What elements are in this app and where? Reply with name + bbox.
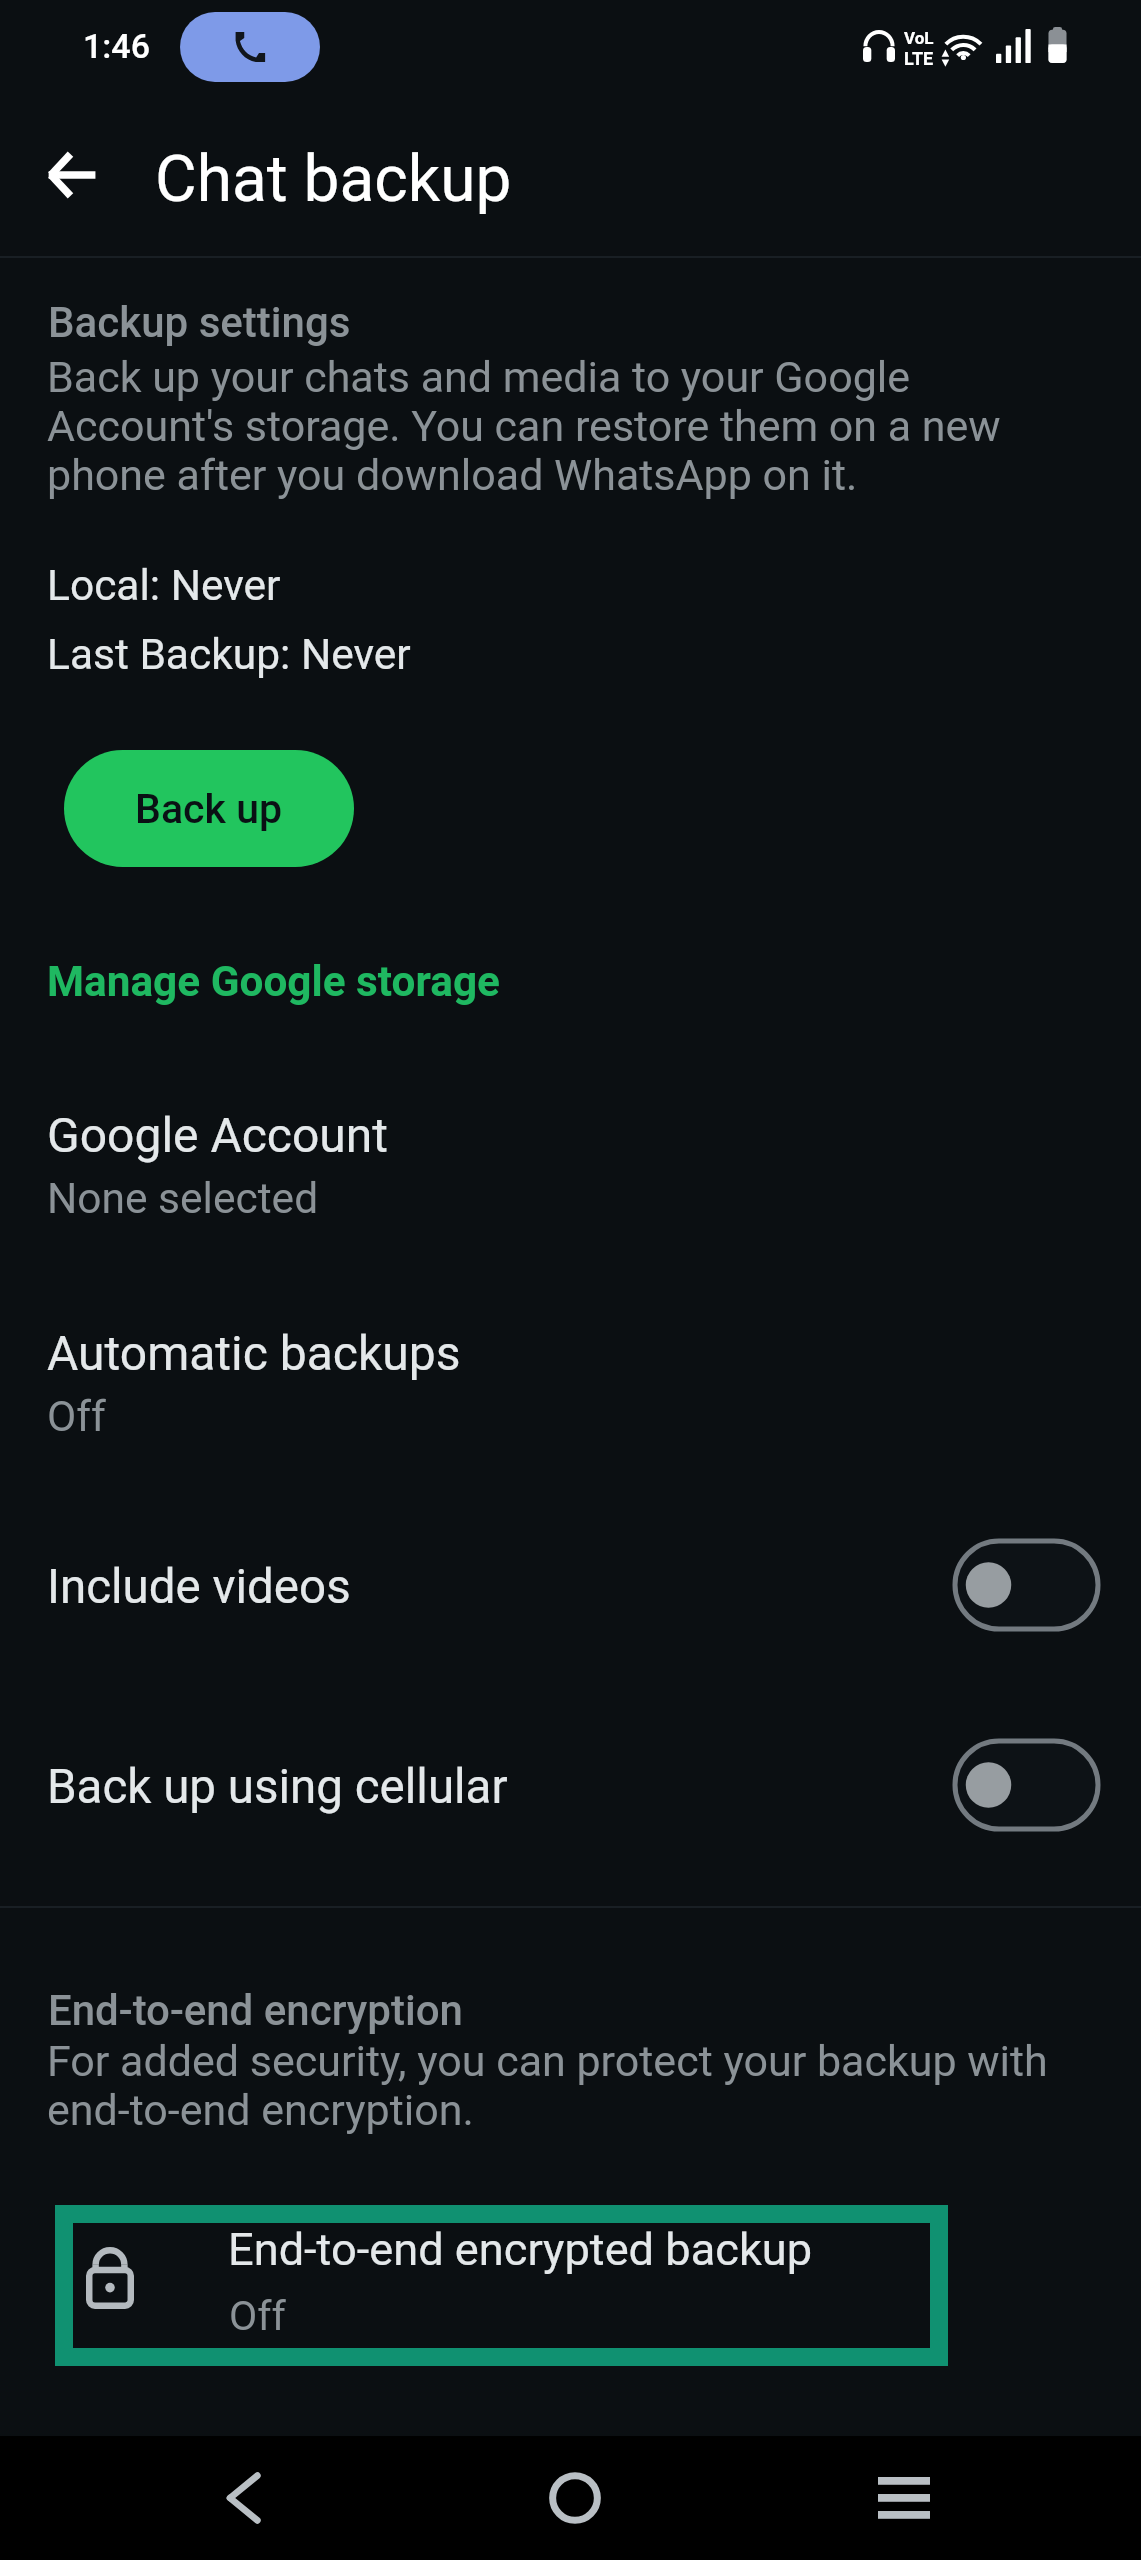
staticText: Chat backup <box>155 142 512 217</box>
staticText: Include videos <box>47 1559 351 1615</box>
staticText: Off <box>47 1392 106 1442</box>
staticText: Backup settings <box>48 298 351 347</box>
button[interactable]: Back up using cellular <box>0 1720 1141 1850</box>
staticText: Back up <box>135 785 283 833</box>
button[interactable]: Include videos <box>0 1520 1141 1650</box>
button[interactable]: Back <box>35 139 107 211</box>
staticText: Back up your chats and media to your Goo… <box>47 352 1057 501</box>
staticText: Automatic backups <box>47 1325 461 1381</box>
button[interactable]: Recent apps <box>844 2436 964 2560</box>
staticText: End-to-end encrypted backup <box>228 2223 813 2276</box>
button[interactable]: Back up <box>64 750 354 867</box>
staticText: Local: Never <box>47 561 281 611</box>
staticText: End-to-end encryption <box>48 1986 463 2035</box>
button[interactable]: Ongoing call <box>180 12 320 82</box>
staticText: For added security, you can protect your… <box>47 2036 1062 2136</box>
button[interactable]: Include videos toggle, off <box>952 1538 1101 1632</box>
staticText: Back up using cellular <box>47 1759 508 1815</box>
button[interactable]: End-to-end encrypted backup <box>55 2205 948 2366</box>
staticText: 1:46 <box>83 26 150 66</box>
button[interactable]: Manage Google storage <box>40 950 520 1020</box>
staticText: LTE <box>904 48 934 69</box>
staticText: Manage Google storage <box>47 957 500 1007</box>
staticText: VoL <box>904 28 934 48</box>
staticText: Last Backup: Never <box>47 630 411 680</box>
button[interactable]: Back <box>183 2436 303 2560</box>
staticText: None selected <box>47 1174 319 1224</box>
staticText: Off <box>229 2292 286 2340</box>
button[interactable]: Google Account <box>0 1090 1141 1230</box>
button[interactable]: Back up using cellular toggle, off <box>952 1738 1101 1832</box>
button[interactable]: Automatic backups <box>0 1308 1141 1448</box>
staticText: Google Account <box>47 1107 389 1163</box>
button[interactable]: Home <box>515 2436 635 2560</box>
